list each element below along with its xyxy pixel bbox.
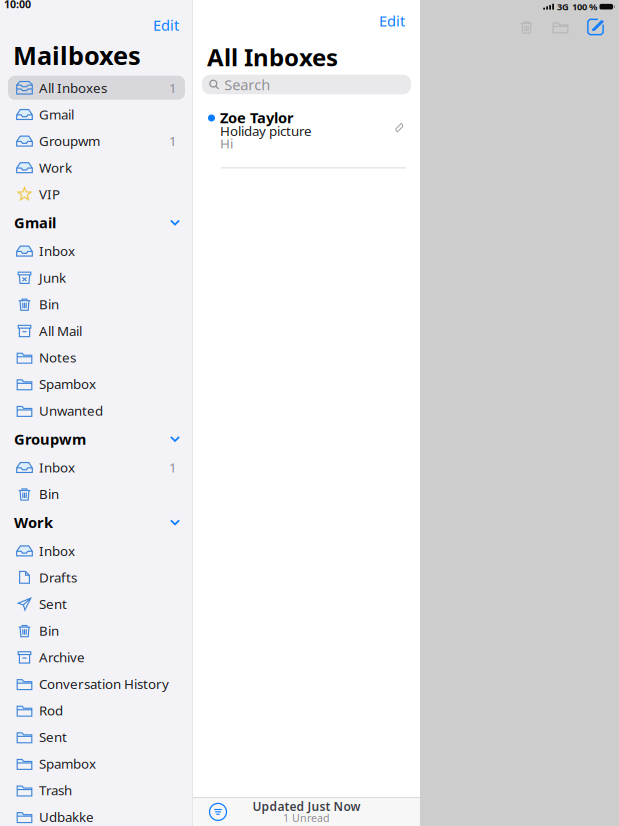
staticText: Archive bbox=[39, 648, 85, 666]
staticText: 10:00 bbox=[4, 0, 31, 11]
staticText: Bin bbox=[39, 485, 59, 503]
staticText: Udbakke bbox=[39, 808, 94, 826]
staticText: Conversation History bbox=[39, 675, 169, 693]
button[interactable]: Collapse Gmail bbox=[166, 212, 184, 232]
staticText: Sent bbox=[39, 595, 67, 613]
staticText: Spambox bbox=[39, 375, 96, 393]
staticText: Inbox bbox=[39, 458, 75, 476]
staticText: Groupwm bbox=[14, 429, 86, 449]
staticText: Unwanted bbox=[39, 402, 103, 419]
button[interactable]: Collapse Work bbox=[166, 512, 184, 532]
staticText: Mailboxes bbox=[13, 38, 141, 72]
button[interactable]: Sent bbox=[0, 724, 193, 750]
staticText: Drafts bbox=[39, 568, 77, 586]
staticText: Inbox bbox=[39, 542, 75, 560]
staticText: Notes bbox=[39, 348, 76, 366]
button[interactable]: All Mail bbox=[0, 317, 193, 344]
staticText: Edit bbox=[379, 11, 405, 30]
button[interactable]: Edit bbox=[371, 11, 413, 31]
staticText: Gmail bbox=[14, 213, 56, 232]
button[interactable]: Work bbox=[0, 154, 193, 181]
staticText: Work bbox=[39, 159, 72, 176]
staticText: Updated Just Now bbox=[252, 798, 360, 814]
button[interactable]: Inbox bbox=[0, 454, 193, 481]
button[interactable]: Compose bbox=[578, 15, 613, 39]
button[interactable]: VIP bbox=[0, 181, 193, 207]
staticText: All Inboxes bbox=[39, 79, 107, 97]
button[interactable]: Conversation History bbox=[0, 670, 193, 697]
button[interactable]: Bin bbox=[0, 291, 193, 317]
staticText: Search bbox=[224, 75, 270, 94]
staticText: All Mail bbox=[39, 322, 82, 340]
button[interactable]: Zoe Taylor bbox=[193, 96, 420, 167]
staticText: 1 bbox=[169, 79, 177, 97]
staticText: Bin bbox=[39, 622, 59, 639]
staticText: Inbox bbox=[39, 242, 75, 260]
staticText: 1 bbox=[169, 458, 177, 476]
staticText: Trash bbox=[39, 781, 72, 799]
button[interactable]: Spambox bbox=[0, 371, 193, 397]
button[interactable]: Unwanted bbox=[0, 397, 193, 424]
staticText: Gmail bbox=[39, 105, 74, 123]
button[interactable]: Udbakke bbox=[0, 803, 193, 826]
button[interactable]: Inbox bbox=[0, 537, 193, 564]
button[interactable]: All Inboxes bbox=[0, 74, 193, 101]
button[interactable]: Edit bbox=[145, 15, 187, 35]
staticText: Edit bbox=[153, 15, 179, 35]
button[interactable]: Archive bbox=[0, 644, 193, 670]
staticText: 3G bbox=[557, 0, 569, 13]
button[interactable]: Delete bbox=[510, 15, 543, 39]
button[interactable]: Notes bbox=[0, 344, 193, 371]
staticText: Junk bbox=[39, 269, 66, 286]
button[interactable]: Collapse Groupwm bbox=[166, 429, 184, 449]
staticText: Sent bbox=[39, 728, 67, 746]
button[interactable]: Groupwm bbox=[0, 128, 193, 154]
staticText: VIP bbox=[39, 185, 60, 203]
staticText: Groupwm bbox=[39, 132, 100, 150]
staticText: 1 bbox=[169, 132, 177, 150]
staticText: Bin bbox=[39, 295, 59, 313]
button[interactable]: Inbox bbox=[0, 238, 193, 264]
staticText: Holiday picture bbox=[220, 122, 312, 140]
staticText: Zoe Taylor bbox=[220, 108, 294, 127]
button[interactable]: Spambox bbox=[0, 750, 193, 777]
button[interactable]: Trash bbox=[0, 777, 193, 803]
button[interactable]: Bin bbox=[0, 617, 193, 644]
staticText: Hi bbox=[220, 134, 233, 152]
button[interactable]: Filter bbox=[202, 797, 234, 826]
button[interactable]: Junk bbox=[0, 264, 193, 291]
staticText: All Inboxes bbox=[207, 41, 338, 73]
staticText: 1 Unread bbox=[283, 811, 330, 825]
staticText: 100 % bbox=[572, 0, 597, 13]
button[interactable]: Move to folder bbox=[543, 15, 578, 39]
button[interactable]: Bin bbox=[0, 481, 193, 507]
staticText: Rod bbox=[39, 701, 63, 719]
staticText: Work bbox=[14, 513, 53, 532]
button[interactable]: Rod bbox=[0, 697, 193, 724]
staticText: Spambox bbox=[39, 755, 96, 772]
button[interactable]: Sent bbox=[0, 591, 193, 617]
button[interactable]: Gmail bbox=[0, 101, 193, 128]
button[interactable]: Drafts bbox=[0, 564, 193, 591]
